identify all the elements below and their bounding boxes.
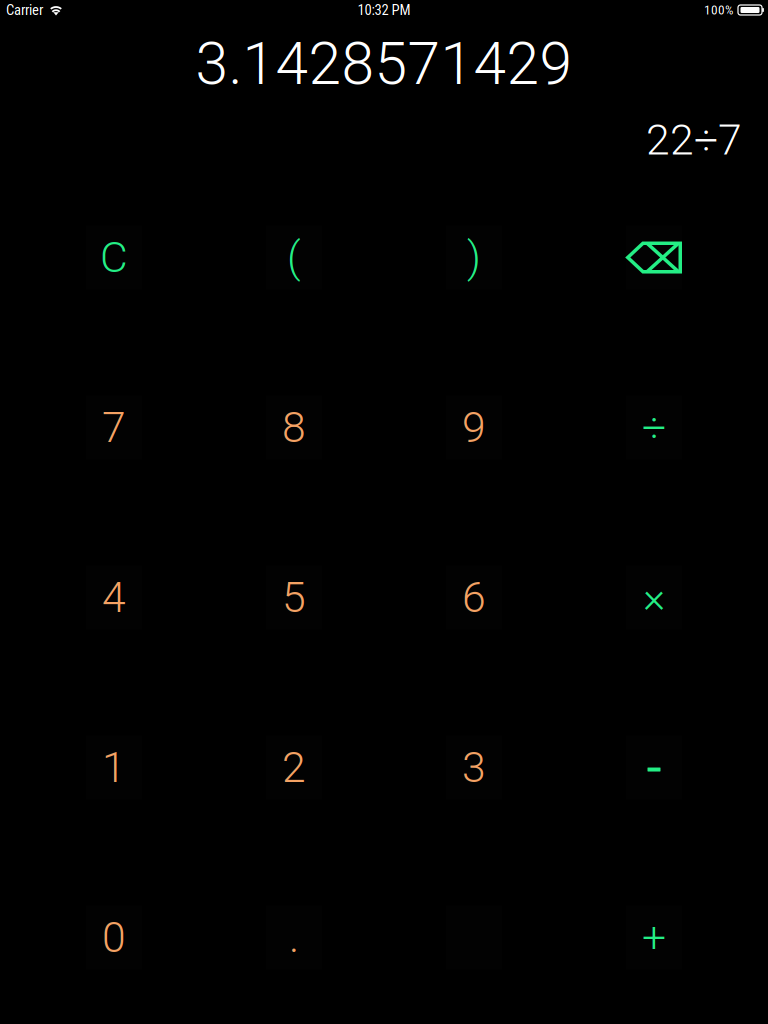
button[interactable]: 0	[86, 905, 142, 969]
button[interactable]: Close parenthesis	[446, 225, 502, 289]
button[interactable]: Multiply	[626, 565, 682, 629]
staticText: ÷	[642, 402, 666, 452]
button[interactable]: Divide	[626, 395, 682, 459]
button[interactable]: 9	[446, 395, 502, 459]
button[interactable]: Clear	[86, 225, 142, 289]
button[interactable]: Plus	[626, 905, 682, 969]
staticText: )	[467, 232, 481, 282]
staticText: 3	[462, 742, 486, 792]
staticText: C	[100, 232, 128, 282]
button[interactable]: 2	[266, 735, 322, 799]
staticText: Carrier	[6, 1, 43, 19]
staticText: 8	[282, 402, 306, 452]
staticText: 9	[462, 402, 486, 452]
button[interactable]: Minus	[626, 735, 682, 799]
staticText: 22÷7	[646, 115, 742, 165]
staticText: 4	[102, 572, 126, 622]
staticText: .	[289, 912, 299, 962]
staticText: 2	[282, 742, 306, 792]
staticText: 1	[102, 742, 126, 792]
button[interactable]: 1	[86, 735, 142, 799]
button[interactable]: 8	[266, 395, 322, 459]
staticText: 0	[102, 912, 126, 962]
staticText: 10:32 PM	[357, 1, 410, 19]
staticText: 7	[102, 402, 126, 452]
staticText: 6	[462, 572, 486, 622]
staticText: (	[287, 232, 301, 282]
staticText: 5	[282, 572, 306, 622]
staticText: ×	[643, 572, 665, 622]
button[interactable]: 7	[86, 395, 142, 459]
button[interactable]: Open parenthesis	[266, 225, 322, 289]
button[interactable]: 6	[446, 565, 502, 629]
staticText: 100%	[704, 2, 733, 18]
button[interactable]: Decimal point	[266, 905, 322, 969]
staticText: 3.1428571429	[195, 30, 572, 98]
button[interactable]: 5	[266, 565, 322, 629]
staticText: +	[642, 912, 666, 962]
button[interactable]: 3	[446, 735, 502, 799]
button[interactable]: Delete	[626, 225, 682, 289]
button[interactable]: 4	[86, 565, 142, 629]
